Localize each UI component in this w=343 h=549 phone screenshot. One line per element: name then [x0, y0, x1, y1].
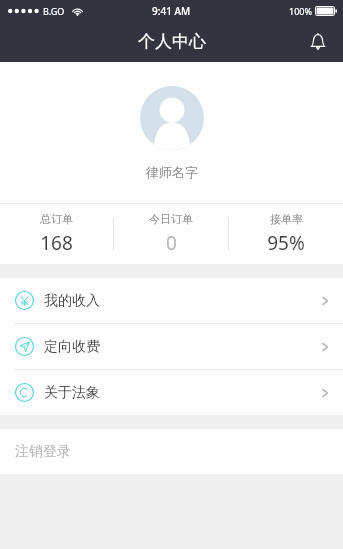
button[interactable]: 关于法象 — [0, 370, 343, 415]
staticText: 9:41 AM — [152, 4, 191, 18]
button[interactable]: 接单率 — [229, 212, 343, 256]
staticText: B.GO — [43, 5, 65, 17]
staticText: 定向收费 — [44, 338, 100, 356]
staticText: 总订单 — [40, 212, 73, 226]
staticText: 接单率 — [270, 212, 303, 226]
staticText: 今日订单 — [149, 212, 193, 226]
staticText: 168 — [40, 230, 73, 256]
button[interactable]: 注销登录 — [0, 429, 343, 474]
button[interactable]: Notifications — [301, 25, 335, 59]
staticText: 0 — [166, 230, 177, 256]
button[interactable]: 总订单 — [0, 212, 113, 256]
staticText: 我的收入 — [44, 292, 100, 310]
button[interactable]: 定向收费 — [0, 324, 343, 369]
button[interactable]: 今日订单 — [114, 212, 228, 256]
staticText: 100% — [289, 5, 312, 17]
staticText: 个人中心 — [138, 31, 206, 52]
staticText: 律师名字 — [146, 164, 198, 180]
staticText: 关于法象 — [44, 384, 100, 402]
staticText: 注销登录 — [15, 443, 71, 461]
staticText: 95% — [267, 230, 305, 256]
button[interactable]: 我的收入 — [0, 278, 343, 323]
